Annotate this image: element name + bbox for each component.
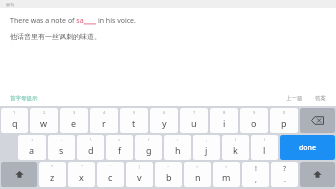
button[interactable]: > [213, 162, 240, 187]
button[interactable]: 首字母提示 [8, 93, 40, 104]
button[interactable]: " [68, 162, 95, 187]
staticText: m [222, 171, 231, 183]
button[interactable]: ! [242, 162, 269, 187]
staticText: s [59, 144, 64, 156]
staticText: ) [264, 137, 266, 142]
staticText: h [175, 144, 181, 156]
button[interactable]: 6 [150, 108, 178, 133]
button[interactable]: 3 [60, 108, 88, 133]
staticText: d [88, 144, 94, 156]
staticText: p [281, 117, 287, 129]
staticText: 1 [13, 110, 16, 115]
staticText: j [205, 144, 208, 156]
button[interactable]: 4 [90, 108, 118, 133]
staticText: 答案 [315, 95, 326, 102]
button[interactable]: 上一题 [284, 95, 305, 102]
staticText: i [223, 117, 226, 129]
staticText: o [251, 117, 257, 129]
staticText: 0 [283, 110, 286, 115]
staticText: 首字母提示 [10, 95, 38, 102]
staticText: There was a note of sa____ in his voice. [10, 16, 136, 26]
staticText: 3 [73, 110, 76, 115]
button[interactable]: \ [77, 135, 104, 160]
button[interactable]: Shift [300, 162, 335, 187]
staticText: ? [283, 164, 287, 174]
staticText: 4 [103, 110, 106, 115]
staticText: u [191, 117, 197, 129]
staticText: r [102, 117, 106, 129]
button[interactable]: ? [271, 162, 298, 187]
staticText: 8 [223, 110, 226, 115]
staticText: z [50, 171, 55, 183]
button[interactable]: 9 [240, 108, 268, 133]
staticText: , [255, 175, 257, 185]
staticText: 例句 [6, 2, 14, 7]
staticText: / [148, 137, 150, 142]
staticText: 9 [253, 110, 256, 115]
staticText: 6 [163, 110, 166, 115]
staticText: + [31, 137, 34, 142]
staticText: g [146, 144, 152, 156]
staticText: \ [90, 137, 92, 142]
staticText: ' [110, 164, 111, 169]
button[interactable]: 8 [210, 108, 238, 133]
button[interactable]: 0 [270, 108, 298, 133]
staticText: - [61, 137, 63, 142]
staticText: . [284, 175, 286, 185]
button[interactable]: done [280, 135, 335, 160]
staticText: 上一题 [286, 95, 303, 102]
staticText: c [108, 171, 113, 183]
button[interactable]: : [164, 135, 191, 160]
staticText: f [118, 144, 122, 156]
button[interactable]: 答案 [313, 95, 328, 102]
button[interactable]: ) [251, 135, 278, 160]
staticText: > [225, 164, 228, 169]
staticText: w [40, 117, 48, 129]
button[interactable]: Shift [1, 162, 37, 187]
button[interactable]: ' [97, 162, 124, 187]
staticText: 5 [133, 110, 136, 115]
staticText: q [12, 117, 18, 129]
button[interactable]: / [135, 135, 162, 160]
button[interactable]: - [48, 135, 75, 160]
staticText: y [162, 117, 167, 129]
staticText: < [196, 164, 199, 169]
button[interactable]: < [184, 162, 211, 187]
staticText: 7 [193, 110, 196, 115]
staticText: ; [206, 137, 208, 142]
staticText: x [79, 171, 84, 183]
staticText: * [51, 164, 54, 169]
staticText: a [29, 144, 35, 156]
button[interactable]: 7 [180, 108, 208, 133]
button[interactable]: ~ [155, 162, 182, 187]
button[interactable]: | [126, 162, 153, 187]
staticText: = [118, 137, 121, 142]
staticText: ( [235, 137, 237, 142]
staticText: | [138, 164, 141, 169]
staticText: " [81, 164, 83, 169]
button[interactable]: * [39, 162, 66, 187]
button[interactable]: ( [222, 135, 249, 160]
staticText: k [233, 144, 238, 156]
staticText: t [132, 117, 136, 129]
staticText: ~ [167, 164, 170, 169]
staticText: l [263, 144, 266, 156]
button[interactable]: ; [193, 135, 220, 160]
staticText: ! [255, 164, 257, 174]
staticText: 2 [43, 110, 46, 115]
staticText: done [299, 143, 317, 153]
button[interactable]: 1 [1, 108, 28, 133]
button[interactable]: Backspace [300, 108, 335, 133]
button[interactable]: 5 [120, 108, 148, 133]
button[interactable]: = [106, 135, 133, 160]
button[interactable]: + [18, 135, 46, 160]
staticText: b [166, 171, 172, 183]
staticText: e [71, 117, 77, 129]
staticText: : [177, 137, 179, 142]
button[interactable]: 2 [30, 108, 58, 133]
staticText: v [137, 171, 142, 183]
staticText: 他话音里有一丝讽刺的味道。 [10, 32, 101, 41]
staticText: n [195, 171, 201, 183]
